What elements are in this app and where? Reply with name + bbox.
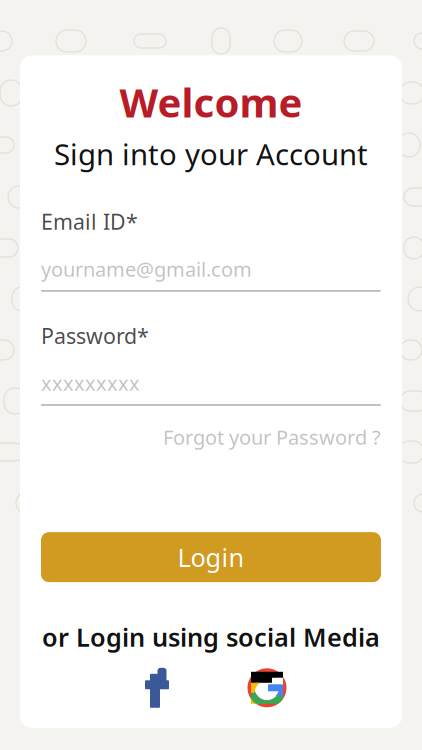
staticText: Login (177, 540, 244, 574)
button[interactable]: Login (41, 532, 381, 582)
staticText: Forgot your Password ? (163, 424, 381, 450)
staticText: xxxxxxxxx (41, 370, 140, 396)
button[interactable]: Forgot your Password ? (41, 420, 381, 454)
button[interactable]: Login with Facebook (135, 666, 175, 710)
staticText: Sign into your Account (54, 134, 368, 173)
staticText: Welcome (119, 75, 302, 128)
staticText: yourname@gmail.com (41, 256, 252, 282)
button[interactable]: Login with Google (247, 666, 287, 710)
staticText: Email ID* (41, 207, 138, 236)
staticText: or Login using social Media (42, 620, 380, 654)
staticText: Password* (41, 321, 149, 350)
